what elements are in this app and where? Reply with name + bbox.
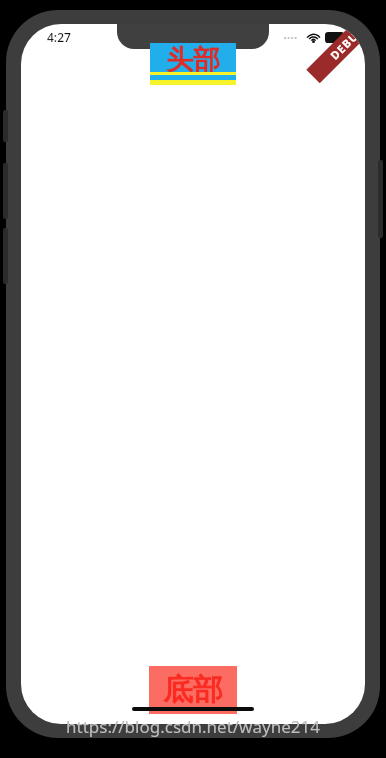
staticText: DEBUG [327, 24, 365, 63]
staticText: 头部 [166, 43, 220, 72]
staticText: https://blog.csdn.net/wayne214 [66, 715, 320, 738]
staticText: 底部 [163, 671, 223, 709]
button[interactable]: 底部 [149, 666, 237, 714]
staticText: 4:27 [47, 29, 71, 45]
button[interactable]: 头部 [150, 43, 236, 85]
